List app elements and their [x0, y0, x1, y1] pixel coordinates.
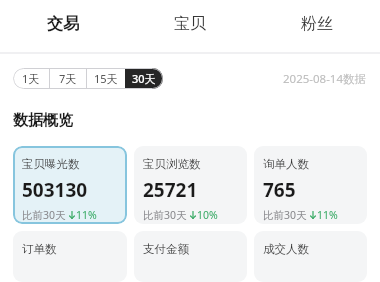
staticText: 订单数 — [22, 242, 57, 256]
button[interactable]: 15天 — [87, 68, 125, 89]
staticText: 11% — [76, 208, 97, 222]
staticText: 比前30天 — [143, 208, 187, 222]
button[interactable]: 7天 — [50, 68, 86, 89]
button[interactable]: 交易 — [0, 14, 126, 34]
staticText: 11% — [317, 208, 338, 222]
staticText: 1天 — [22, 71, 40, 86]
staticText: 数据概览 — [13, 111, 73, 130]
staticText: 宝贝 — [174, 14, 206, 34]
staticText: 7天 — [59, 71, 77, 86]
button[interactable]: 宝贝 — [126, 14, 253, 34]
staticText: 成交人数 — [263, 242, 309, 256]
staticText: 粉丝 — [301, 14, 333, 34]
staticText: 765 — [263, 177, 296, 203]
staticText: 30天 — [132, 71, 156, 86]
staticText: 比前30天 — [22, 208, 66, 222]
staticText: 10% — [197, 208, 218, 222]
staticText: 支付金额 — [143, 242, 189, 256]
staticText: 15天 — [94, 71, 118, 86]
button[interactable]: 1天 — [13, 68, 49, 89]
staticText: 比前30天 — [263, 208, 307, 222]
button[interactable]: 30天 — [125, 68, 163, 89]
staticText: 询单人数 — [263, 157, 309, 171]
button[interactable]: 支付金额 — [134, 231, 247, 282]
button[interactable]: 订单数 — [13, 231, 127, 282]
staticText: 2025-08-14数据 — [283, 71, 367, 87]
button[interactable]: 宝贝浏览数 — [134, 146, 247, 224]
button[interactable]: 粉丝 — [253, 14, 380, 34]
staticText: 宝贝曝光数 — [22, 157, 80, 171]
staticText: 503130 — [22, 177, 88, 203]
button[interactable]: 询单人数 — [254, 146, 367, 224]
staticText: 交易 — [47, 14, 79, 34]
button[interactable]: 宝贝曝光数 — [13, 146, 127, 224]
staticText: 25721 — [143, 177, 198, 203]
staticText: 宝贝浏览数 — [143, 157, 201, 171]
button[interactable]: 成交人数 — [254, 231, 367, 282]
